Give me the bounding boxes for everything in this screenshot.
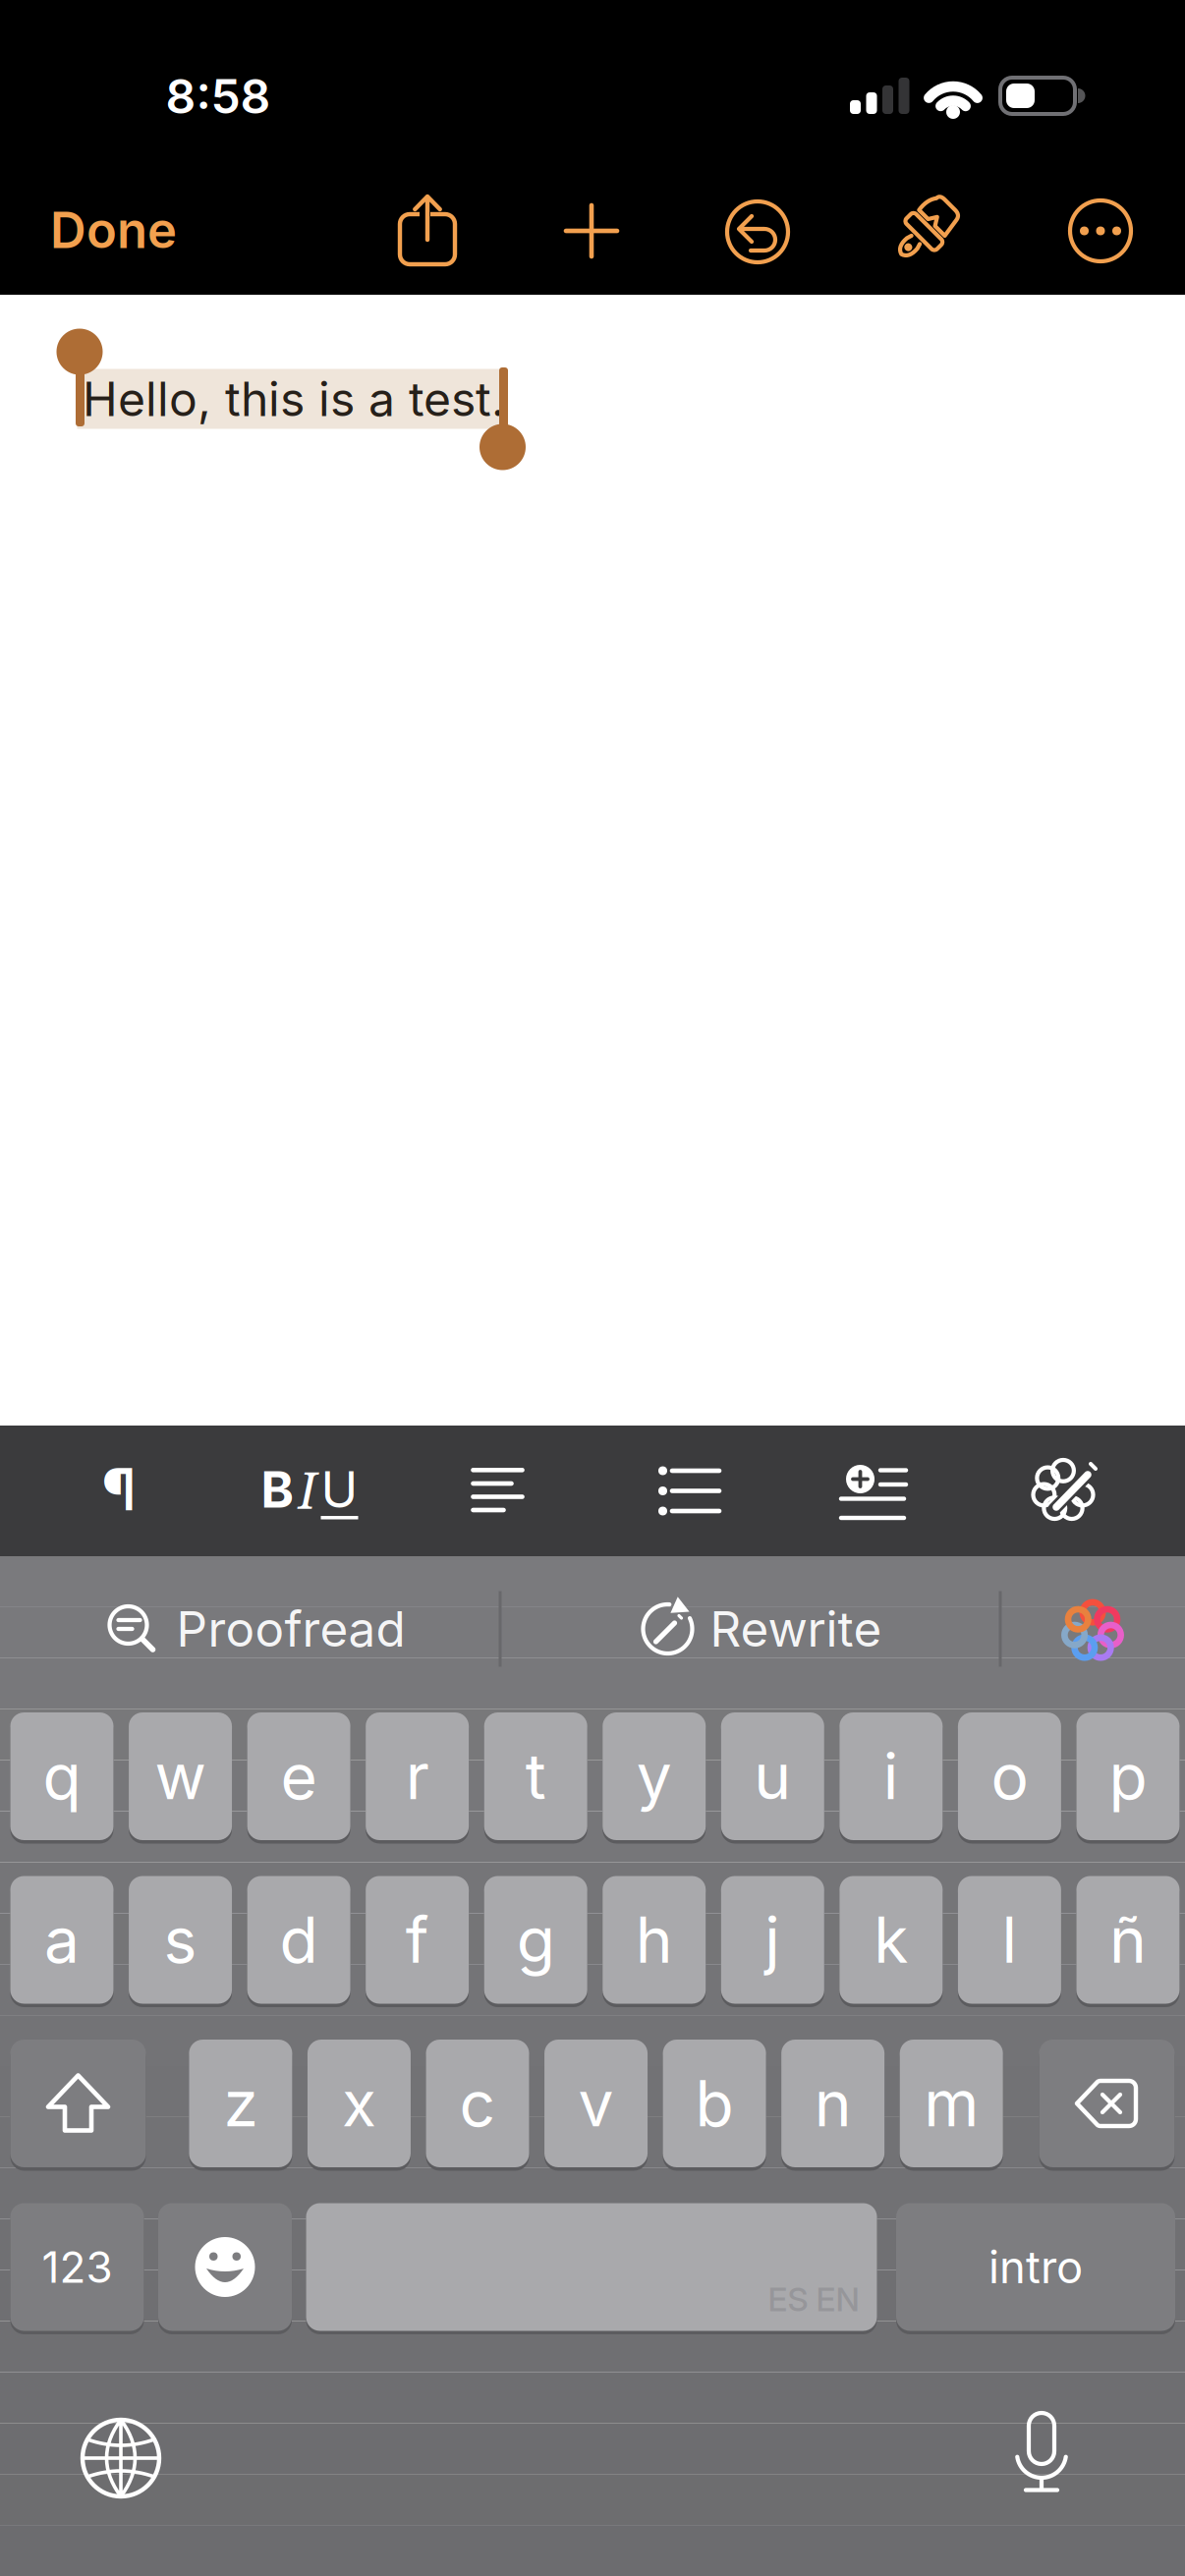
staticText: l [1002, 1902, 1017, 1978]
button[interactable]: k [840, 1876, 943, 2004]
button[interactable]: b [663, 2040, 766, 2167]
button[interactable]: Proofread [51, 1575, 464, 1683]
button[interactable]: l [958, 1876, 1061, 2004]
staticText: b [695, 2065, 734, 2141]
button[interactable]: f [366, 1876, 469, 2004]
button[interactable]: Shift [10, 2040, 146, 2167]
button[interactable]: Share [388, 186, 467, 274]
button[interactable]: Apple Intelligence [1048, 1587, 1137, 1675]
staticText: v [578, 2065, 614, 2141]
button[interactable]: Emoji [158, 2203, 292, 2331]
staticText: ¶ [102, 1455, 136, 1524]
staticText: Rewrite [710, 1600, 882, 1658]
staticText: z [223, 2065, 258, 2141]
button[interactable]: Done [50, 186, 286, 274]
staticText: h [636, 1902, 673, 1978]
staticText: intro [988, 2240, 1083, 2294]
staticText: Proofread [176, 1600, 405, 1658]
button[interactable]: Rewrite [575, 1575, 948, 1683]
staticText: w [155, 1738, 206, 1814]
staticText: f [405, 1902, 429, 1978]
staticText: i [883, 1738, 899, 1814]
button[interactable]: j [721, 1876, 824, 2004]
staticText: g [517, 1902, 555, 1978]
button[interactable]: Alignment [473, 1468, 523, 1513]
button[interactable]: g [484, 1876, 587, 2004]
staticText: e [281, 1738, 317, 1814]
button[interactable]: o [958, 1712, 1061, 1840]
button[interactable]: m [900, 2040, 1003, 2167]
staticText: j [765, 1902, 780, 1978]
button[interactable]: x [307, 2040, 411, 2167]
button[interactable]: Dictate [992, 2403, 1091, 2501]
button[interactable]: w [129, 1712, 232, 1840]
button[interactable]: e [247, 1712, 350, 1840]
staticText: t [525, 1738, 546, 1814]
button[interactable]: h [603, 1876, 706, 2004]
staticText: k [874, 1902, 908, 1978]
staticText: Hello, this is a test. [83, 370, 505, 427]
button[interactable]: d [247, 1876, 350, 2004]
staticText: a [44, 1902, 80, 1978]
staticText: d [280, 1902, 318, 1978]
staticText: c [459, 2065, 496, 2141]
staticText: ES EN [768, 2279, 859, 2319]
button[interactable]: c [426, 2040, 529, 2167]
button[interactable]: Bold Italic Underline [236, 1440, 383, 1539]
staticText: s [164, 1902, 197, 1978]
staticText: 8:58 [166, 68, 271, 125]
staticText: ñ [1109, 1902, 1147, 1978]
staticText: o [991, 1738, 1028, 1814]
button[interactable]: Insert [841, 1465, 906, 1520]
button[interactable]: r [366, 1712, 469, 1840]
staticText: x [342, 2065, 376, 2141]
staticText: Done [50, 200, 177, 260]
staticText: n [814, 2065, 852, 2141]
button[interactable]: i [840, 1712, 943, 1840]
button[interactable]: y [603, 1712, 706, 1840]
button[interactable]: Add [566, 205, 617, 256]
button[interactable]: More [1068, 198, 1133, 263]
staticText: u [754, 1738, 791, 1814]
button[interactable]: intro [896, 2203, 1175, 2331]
staticText: q [43, 1738, 81, 1814]
button[interactable]: z [189, 2040, 292, 2167]
staticText: m [924, 2065, 979, 2141]
button[interactable]: Delete [1039, 2040, 1175, 2167]
button[interactable]: Next keyboard [72, 2409, 170, 2507]
staticText: y [637, 1738, 672, 1814]
button[interactable]: Format [896, 194, 953, 268]
button[interactable]: Undo [725, 199, 790, 264]
button[interactable]: s [129, 1876, 232, 2004]
staticText: 123 [42, 2241, 113, 2293]
button[interactable]: Numbers [10, 2203, 144, 2331]
button[interactable]: ñ [1076, 1876, 1180, 2004]
staticText: I [298, 1456, 317, 1523]
staticText: U [321, 1459, 358, 1519]
staticText: B [261, 1459, 294, 1519]
button[interactable]: Lists [658, 1466, 719, 1515]
button[interactable]: t [484, 1712, 587, 1840]
button[interactable]: n [781, 2040, 884, 2167]
button[interactable]: Writing Tools [1031, 1458, 1096, 1523]
button[interactable]: Paragraph styles [75, 1440, 163, 1539]
button[interactable]: v [544, 2040, 648, 2167]
button[interactable]: q [10, 1712, 113, 1840]
staticText: r [405, 1738, 429, 1814]
button[interactable]: a [10, 1876, 113, 2004]
button[interactable]: u [721, 1712, 824, 1840]
button[interactable]: Space [306, 2203, 877, 2331]
staticText: p [1109, 1738, 1147, 1814]
button[interactable]: p [1076, 1712, 1180, 1840]
